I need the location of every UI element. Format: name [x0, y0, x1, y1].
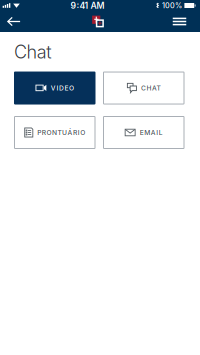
button[interactable]: VIDEO: [14, 72, 95, 104]
staticText: 100%: [162, 1, 182, 10]
button[interactable]: EMAIL: [103, 116, 184, 148]
staticText: CHAT: [141, 84, 160, 92]
button[interactable]: Menu: [169, 11, 200, 32]
button[interactable]: CHAT: [103, 72, 184, 104]
staticText: EMAIL: [140, 128, 163, 137]
staticText: VIDEO: [51, 84, 74, 92]
button[interactable]: Back: [0, 11, 27, 32]
staticText: Chat: [14, 41, 51, 63]
staticText: 9:41 AM: [70, 0, 104, 11]
staticText: PRONTUÁRIO: [37, 128, 85, 137]
button[interactable]: PRONTUÁRIO: [14, 116, 95, 148]
